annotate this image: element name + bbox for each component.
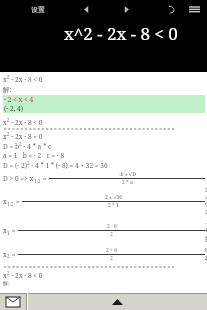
staticText: x2 - 2x - 8 = 0 xyxy=(3,131,43,141)
staticText: -b ± √D xyxy=(119,171,136,178)
staticText: a = 1 b = - 2 c = - 8 xyxy=(3,151,65,160)
staticText: 2 ± √36 xyxy=(105,194,122,201)
staticText: = xyxy=(14,197,22,206)
button[interactable]: Menu xyxy=(185,0,203,18)
staticText: 设置 xyxy=(31,5,45,14)
staticText: x xyxy=(3,226,7,235)
staticText: x2 - 2x - 8 < 0 xyxy=(3,117,43,127)
button[interactable]: Expand xyxy=(28,293,207,310)
staticText: 2 xyxy=(7,253,10,259)
staticText: = xyxy=(41,174,49,183)
staticText: x^2 - 2x - 8 < 0 xyxy=(64,22,178,45)
staticText: (- 2, 4) xyxy=(4,104,24,113)
staticText: 解: xyxy=(3,280,10,287)
button[interactable]: 设置 xyxy=(28,3,48,16)
button[interactable]: Next xyxy=(118,1,134,17)
staticText: x xyxy=(3,250,7,259)
staticText: D = (- 2)2 - 4 * 1 * (- 8) = 4 + 32 = 36 xyxy=(3,160,108,170)
button[interactable]: Undo xyxy=(163,1,179,17)
staticText: 2 * 1 xyxy=(108,202,119,209)
button[interactable]: Previous xyxy=(78,1,94,17)
staticText: = xyxy=(10,226,18,235)
staticText: D > 0 => x xyxy=(3,174,34,183)
staticText: 2 xyxy=(110,231,113,238)
staticText: x2 - 2x - 8 < 0 xyxy=(3,74,43,84)
staticText: 2 + 6 xyxy=(106,247,117,254)
staticText: 2 * a xyxy=(122,179,133,186)
staticText: 2 - 6 xyxy=(107,223,117,230)
button[interactable]: Mail xyxy=(0,293,26,310)
staticText: D = b2 - 4 * a * c xyxy=(3,141,52,151)
staticText: 1,2 xyxy=(7,201,14,207)
staticText: 1 xyxy=(7,230,10,236)
staticText: x xyxy=(3,197,7,206)
staticText: - 2 < x < 4 xyxy=(4,95,34,104)
staticText: 2 xyxy=(110,255,113,262)
staticText: = xyxy=(10,250,18,259)
staticText: x2 - 2x - 8 < 0 xyxy=(3,270,43,280)
staticText: 解: xyxy=(3,85,12,94)
staticText: 1,2 xyxy=(34,178,41,184)
